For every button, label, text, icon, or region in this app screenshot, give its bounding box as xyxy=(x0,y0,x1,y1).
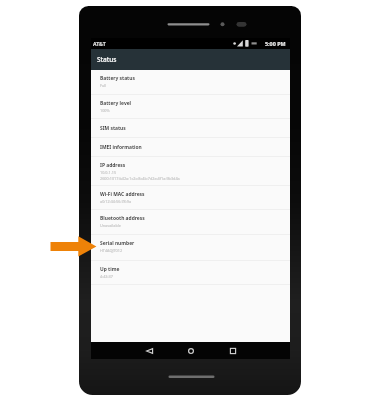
staticText: 5:00 PM xyxy=(265,40,286,47)
staticText: a0:12:34:56:78:9a xyxy=(100,199,132,204)
button[interactable]: Bluetooth address xyxy=(91,210,290,235)
staticText: Battery level xyxy=(100,100,132,107)
button[interactable]: IMEI information xyxy=(91,138,290,157)
button[interactable]: Recent apps xyxy=(223,342,243,359)
button[interactable]: Status xyxy=(91,49,290,70)
staticText: 4:43:37 xyxy=(100,274,113,279)
staticText: AT&T xyxy=(93,40,106,47)
staticText: Up time xyxy=(100,266,120,273)
button[interactable]: Wi-Fi MAC address xyxy=(91,186,290,210)
button[interactable]: Battery status xyxy=(91,70,290,95)
staticText: Full xyxy=(100,83,107,88)
staticText: SIM status xyxy=(100,125,126,132)
staticText: 10.0.1.15 2600:1017:b42a:1c2c:8c4b:7d2e:… xyxy=(100,170,180,181)
button[interactable]: Up time xyxy=(91,261,290,285)
staticText: Serial number xyxy=(100,240,135,247)
button[interactable]: Home xyxy=(181,342,201,359)
staticText: IP address xyxy=(100,162,126,169)
staticText: Unavailable xyxy=(100,223,121,228)
staticText: Status xyxy=(97,55,117,64)
staticText: Wi-Fi MAC address xyxy=(100,191,145,198)
staticText: 100% xyxy=(100,108,110,113)
button[interactable]: Battery level xyxy=(91,95,290,119)
button[interactable]: Serial number xyxy=(91,235,290,261)
button[interactable]: Back xyxy=(139,342,159,359)
button[interactable]: SIM status xyxy=(91,119,290,138)
button[interactable]: IP address xyxy=(91,157,290,186)
staticText: HT4AQJT012 xyxy=(100,248,123,253)
staticText: Battery status xyxy=(100,75,135,82)
staticText: IMEI information xyxy=(100,144,142,151)
staticText: Bluetooth address xyxy=(100,215,145,222)
